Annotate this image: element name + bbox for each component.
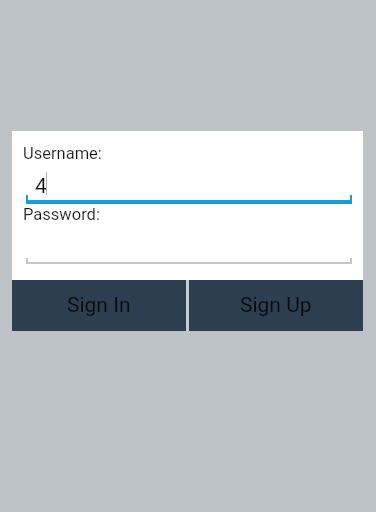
button[interactable]: Sign In — [12, 280, 186, 331]
staticText: Sign In — [67, 293, 131, 318]
staticText: Username: — [23, 144, 102, 163]
button[interactable]: 4 — [26, 165, 352, 203]
staticText: 4 — [35, 174, 47, 199]
button[interactable]: Sign Up — [189, 280, 363, 331]
staticText: Sign Up — [240, 293, 312, 318]
button[interactable] — [26, 227, 352, 264]
staticText: Password: — [23, 205, 100, 224]
